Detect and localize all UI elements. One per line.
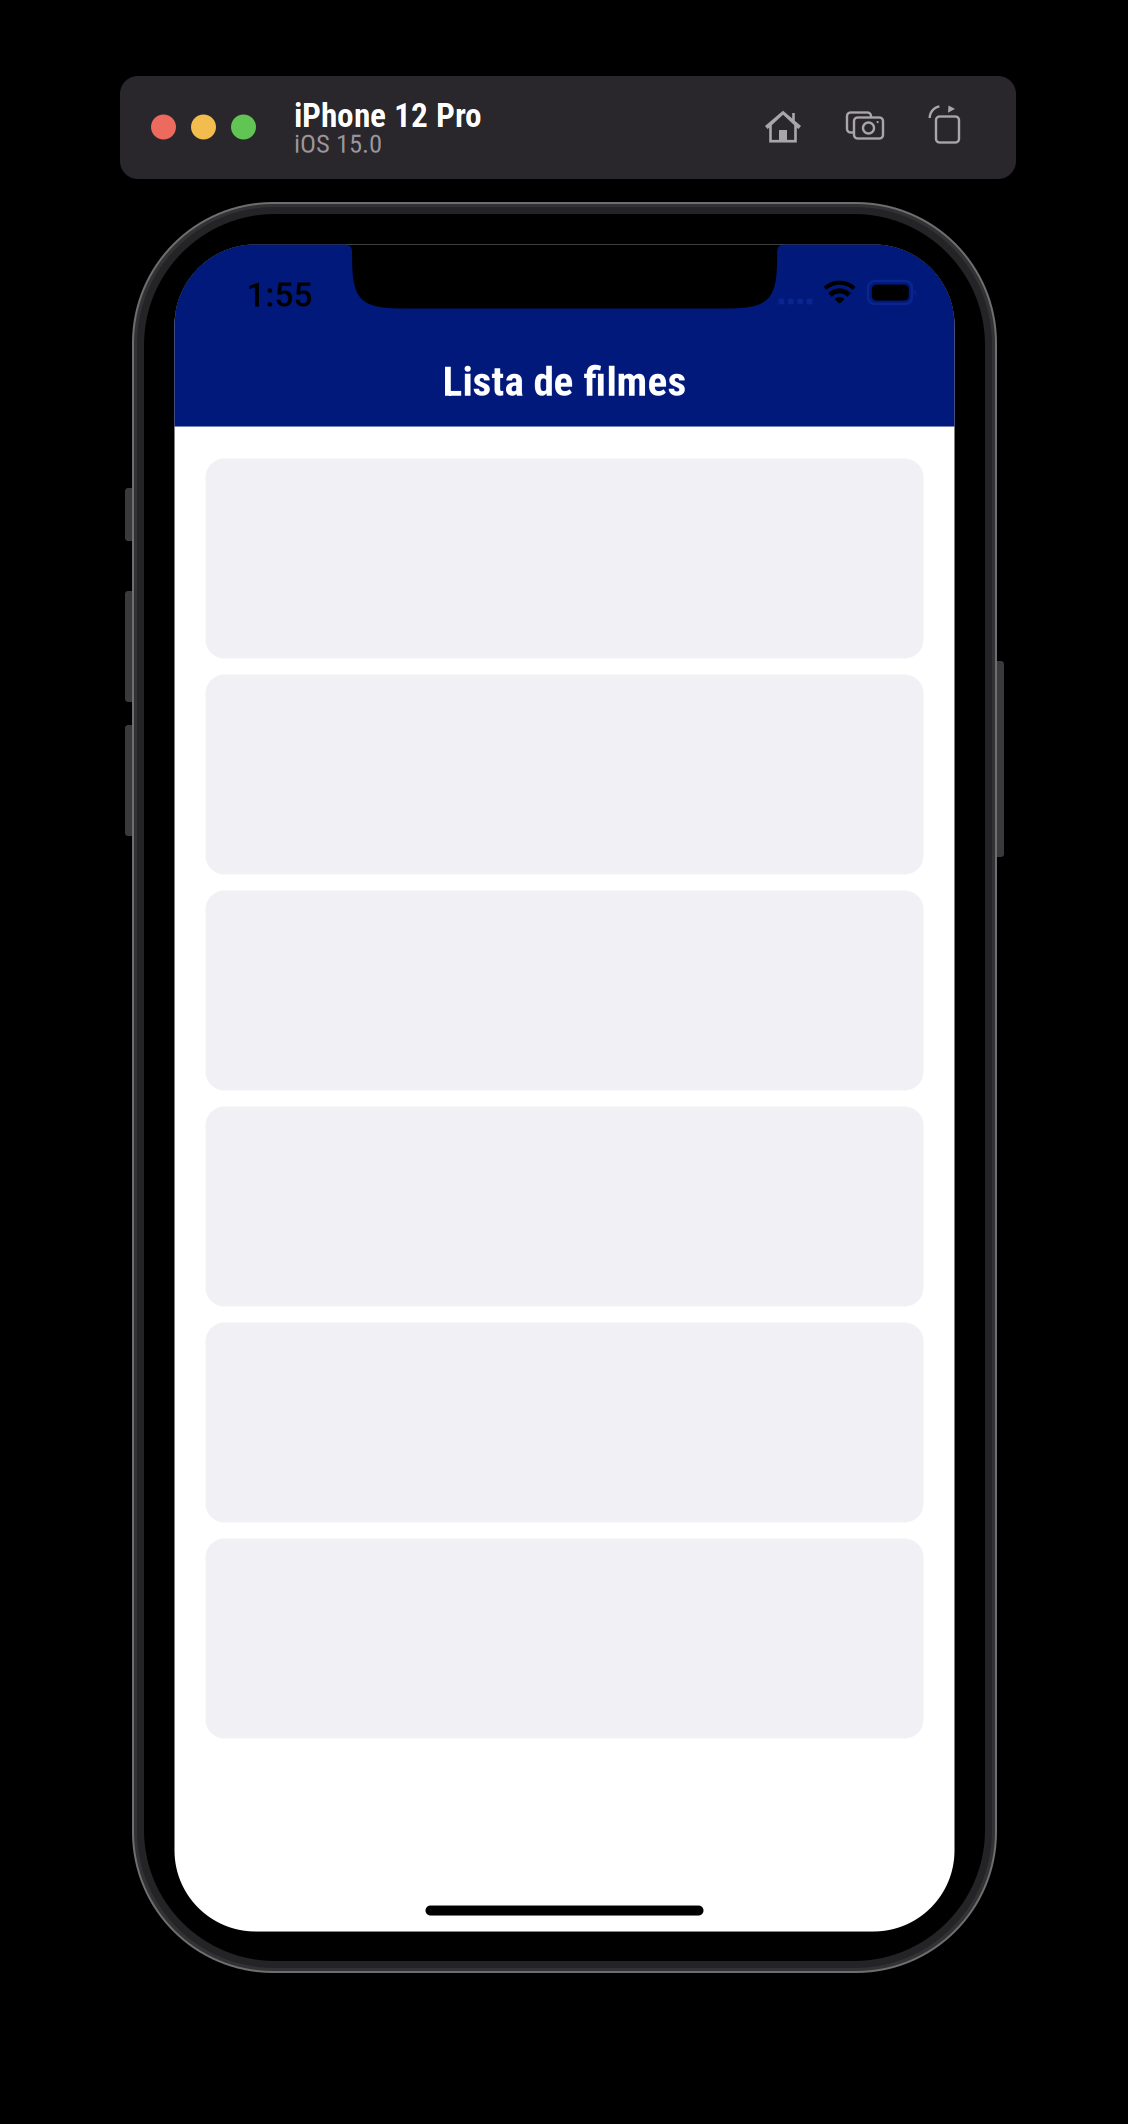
staticText: iPhone 12 Pro xyxy=(294,96,482,135)
button[interactable]: Zoom xyxy=(231,114,256,139)
button[interactable]: Close xyxy=(151,114,176,139)
button[interactable]: Minimise xyxy=(191,114,216,139)
button[interactable]: Rotate xyxy=(927,105,959,142)
staticText: 1:55 xyxy=(246,275,312,315)
staticText: iOS 15.0 xyxy=(294,128,382,159)
button[interactable]: Home xyxy=(764,106,802,143)
staticText: Lista de filmes xyxy=(442,357,686,406)
button[interactable]: Screenshot xyxy=(847,106,884,143)
